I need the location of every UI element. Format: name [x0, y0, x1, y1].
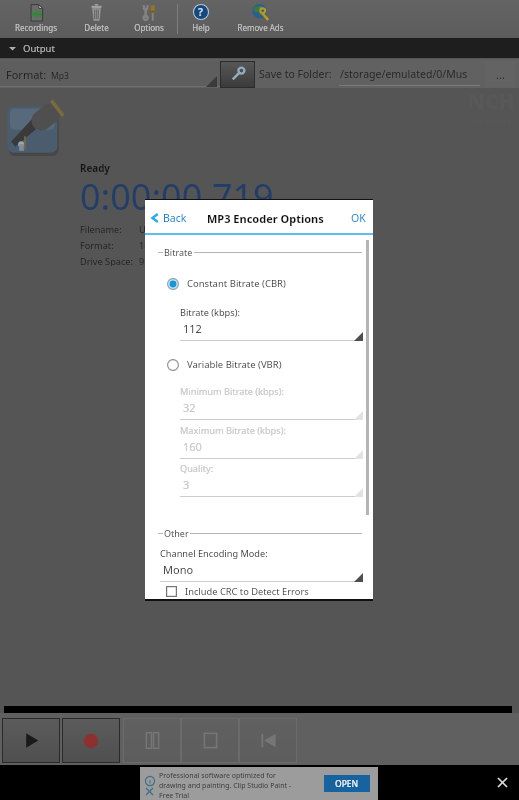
- button[interactable]: OPEN: [324, 775, 370, 792]
- staticText: 16 b: [139, 239, 158, 250]
- button[interactable]: Back: [150, 211, 187, 225]
- staticText: /storage/emulated/0/Mus: [340, 67, 468, 81]
- staticText: Drive Space:: [80, 255, 134, 266]
- staticText: Help: [192, 22, 210, 33]
- button[interactable]: Remove Ads: [222, 0, 298, 38]
- staticText: Minimum Bitrate (kbps):: [180, 385, 284, 398]
- staticText: Channel Encoding Mode:: [160, 547, 268, 560]
- staticText: 3: [183, 477, 190, 492]
- button[interactable]: OK: [351, 211, 366, 225]
- staticText: 112: [183, 321, 202, 336]
- staticText: Other: [164, 527, 189, 539]
- button[interactable]: Record: [62, 718, 120, 763]
- staticText: 9.11: [139, 255, 158, 266]
- staticText: drawing and painting. Clip Studio Paint …: [159, 781, 292, 791]
- staticText: Back: [163, 211, 187, 225]
- staticText: Format:: [80, 239, 114, 250]
- button[interactable]: /storage/emulated/0/Mus: [339, 63, 480, 86]
- staticText: Delete: [84, 22, 109, 33]
- staticText: 0:00:00.719: [80, 172, 274, 221]
- staticText: Bitrate (kbps):: [180, 306, 240, 319]
- staticText: 160: [183, 439, 202, 454]
- staticText: Professional software optimized for: [159, 771, 276, 781]
- button[interactable]: Play: [2, 718, 60, 763]
- button[interactable]: Close ad: [495, 775, 510, 790]
- staticText: Free Trial: [159, 791, 190, 800]
- button[interactable]: Include CRC to Detect Errors: [166, 585, 309, 598]
- staticText: Unti: [139, 223, 158, 234]
- staticText: ...: [496, 67, 505, 82]
- staticText: OPEN: [335, 778, 359, 790]
- staticText: Options: [134, 22, 164, 33]
- button[interactable]: ...: [486, 62, 515, 87]
- button[interactable]: Previous: [239, 718, 297, 763]
- staticText: Output: [23, 42, 55, 55]
- button[interactable]: 112: [180, 320, 363, 341]
- button[interactable]: Stop: [181, 718, 239, 763]
- staticText: Filename:: [80, 223, 122, 234]
- staticText: Mp3: [51, 70, 69, 82]
- button[interactable]: 3: [180, 476, 363, 497]
- staticText: Format:: [6, 67, 47, 82]
- button[interactable]: 32: [180, 399, 363, 420]
- button[interactable]: Format:: [0, 61, 220, 87]
- staticText: Recordings: [15, 22, 57, 33]
- button[interactable]: Output: [0, 38, 519, 58]
- staticText: MP3 Encoder Options: [207, 211, 324, 226]
- staticText: 32: [183, 400, 196, 415]
- staticText: Bitrate: [164, 246, 193, 258]
- button[interactable]: Constant Bitrate (CBR): [167, 277, 362, 290]
- button[interactable]: Options: [122, 0, 176, 38]
- staticText: Constant Bitrate (CBR): [187, 277, 286, 290]
- staticText: Variable Bitrate (VBR): [187, 358, 282, 371]
- button[interactable]: Delete: [70, 0, 122, 38]
- button[interactable]: Format settings: [220, 61, 255, 88]
- button[interactable]: Variable Bitrate (VBR): [167, 358, 362, 371]
- staticText: OK: [351, 211, 366, 225]
- button[interactable]: 160: [180, 438, 363, 459]
- button[interactable]: Professional software optimized for: [140, 767, 378, 800]
- staticText: Include CRC to Detect Errors: [185, 585, 309, 598]
- staticText: ?: [198, 5, 204, 19]
- staticText: Maximum Bitrate (kbps):: [180, 424, 286, 437]
- staticText: Remove Ads: [237, 22, 284, 33]
- button[interactable]: Recordings: [2, 0, 70, 38]
- button[interactable]: ?: [180, 0, 222, 38]
- button[interactable]: Mono: [160, 561, 363, 582]
- staticText: Quality:: [180, 462, 214, 475]
- button[interactable]: Pause: [123, 718, 181, 763]
- staticText: Mono: [163, 562, 194, 577]
- staticText: Save to Folder:: [259, 67, 332, 81]
- staticText: Ready: [80, 162, 110, 175]
